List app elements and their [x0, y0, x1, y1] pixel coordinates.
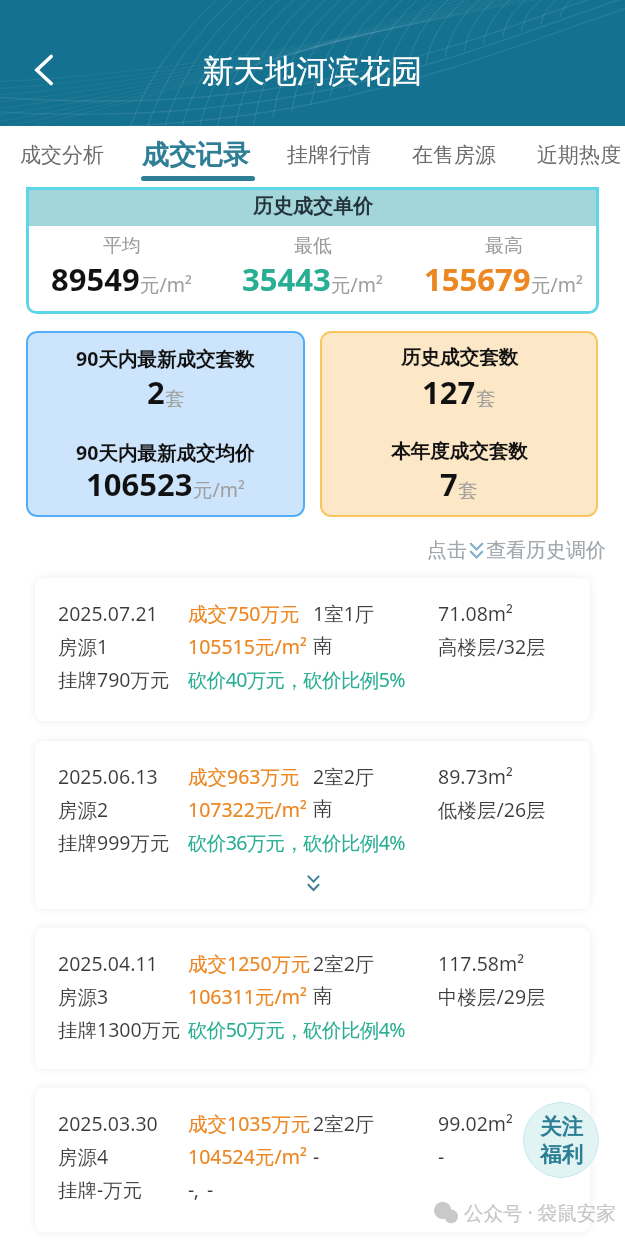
- button[interactable]: 历史成交套数: [320, 331, 598, 517]
- staticText: 套: [476, 386, 496, 411]
- staticText: 公众号 · 袋鼠安家: [464, 1199, 616, 1226]
- staticText: 南: [313, 633, 333, 658]
- button[interactable]: 2025.03.30: [35, 1088, 590, 1232]
- staticText: 89549: [51, 258, 140, 300]
- staticText: 查看历史调价: [486, 538, 606, 563]
- staticText: 砍价36万元，砍价比例4%: [188, 829, 405, 856]
- staticText: 关注: [540, 1113, 583, 1140]
- staticText: -: [313, 1143, 320, 1170]
- staticText: 2025.04.11: [58, 950, 158, 977]
- staticText: 90天内最新成交均价: [76, 439, 255, 466]
- staticText: 35443: [242, 258, 331, 300]
- staticText: 104524元/m²: [188, 1143, 307, 1170]
- staticText: 元/m²: [193, 476, 245, 503]
- staticText: 117.58m²: [438, 950, 525, 977]
- staticText: 105515元/m²: [188, 633, 307, 660]
- staticText: 最低: [294, 234, 332, 258]
- staticText: 成交963万元: [188, 763, 300, 790]
- staticText: 房源1: [58, 633, 109, 660]
- button[interactable]: Back: [16, 42, 72, 98]
- button[interactable]: 在售房源: [400, 126, 510, 187]
- staticText: 在售房源: [412, 142, 496, 168]
- staticText: 155679: [424, 258, 531, 300]
- staticText: 近期热度: [537, 142, 621, 168]
- staticText: 99.02m²: [438, 1110, 513, 1137]
- staticText: 挂牌790万元: [58, 666, 170, 693]
- staticText: 点击: [427, 538, 467, 563]
- staticText: 2025.07.21: [58, 600, 158, 627]
- staticText: 90天内最新成交套数: [76, 345, 255, 372]
- staticText: 中楼层/29层: [438, 983, 546, 1010]
- staticText: 127: [422, 371, 476, 413]
- staticText: 2室2厅: [313, 950, 375, 977]
- staticText: 成交1250万元: [188, 950, 311, 977]
- staticText: 2室2厅: [313, 1110, 375, 1137]
- staticText: 成交分析: [20, 142, 104, 168]
- button[interactable]: 成交记录: [130, 126, 266, 187]
- staticText: 元/m²: [140, 271, 192, 298]
- staticText: 2025.06.13: [58, 763, 158, 790]
- staticText: 107322元/m²: [188, 796, 307, 823]
- staticText: -, -: [188, 1176, 213, 1203]
- staticText: 挂牌-万元: [58, 1176, 143, 1203]
- button[interactable]: 2025.07.21: [35, 578, 590, 721]
- staticText: 2室2厅: [313, 763, 375, 790]
- staticText: 历史成交单价: [253, 194, 373, 219]
- staticText: 砍价40万元，砍价比例5%: [188, 666, 405, 693]
- staticText: 平均: [103, 234, 141, 258]
- staticText: 福利: [540, 1141, 583, 1168]
- staticText: 元/m²: [331, 271, 383, 298]
- button[interactable]: 历史成交单价: [26, 187, 599, 314]
- staticText: 砍价50万元，砍价比例4%: [188, 1016, 405, 1043]
- staticText: 套: [165, 386, 185, 411]
- staticText: 新天地河滨花园: [202, 52, 423, 92]
- staticText: 房源4: [58, 1143, 109, 1170]
- staticText: 挂牌行情: [287, 142, 371, 168]
- staticText: 89.73m²: [438, 763, 513, 790]
- staticText: 成交记录: [142, 138, 250, 172]
- button[interactable]: 2025.04.11: [35, 928, 590, 1069]
- staticText: 71.08m²: [438, 600, 513, 627]
- staticText: 7: [440, 463, 458, 505]
- staticText: 房源3: [58, 983, 109, 1010]
- staticText: 低楼层/26层: [438, 796, 546, 823]
- button[interactable]: 成交分析: [8, 126, 118, 187]
- staticText: 成交750万元: [188, 600, 300, 627]
- staticText: 1室1厅: [313, 600, 375, 627]
- button[interactable]: 90天内最新成交套数: [26, 331, 305, 517]
- staticText: 106523: [86, 463, 193, 505]
- staticText: 成交1035万元: [188, 1110, 311, 1137]
- button[interactable]: 挂牌行情: [275, 126, 385, 187]
- staticText: 套: [458, 478, 478, 503]
- button[interactable]: 展开更多: [283, 859, 343, 905]
- button[interactable]: 点击: [427, 533, 606, 567]
- button[interactable]: 2025.06.13: [35, 741, 590, 909]
- staticText: 最高: [485, 234, 523, 258]
- staticText: 2025.03.30: [58, 1110, 158, 1137]
- staticText: 房源2: [58, 796, 109, 823]
- staticText: 高楼层/32层: [438, 633, 546, 660]
- staticText: 本年度成交套数: [391, 439, 528, 464]
- staticText: 南: [313, 983, 333, 1008]
- staticText: 南: [313, 796, 333, 821]
- staticText: 2: [147, 371, 165, 413]
- staticText: 挂牌999万元: [58, 829, 170, 856]
- staticText: 元/m²: [531, 271, 583, 298]
- staticText: 历史成交套数: [401, 345, 518, 370]
- staticText: 106311元/m²: [188, 983, 307, 1010]
- staticText: -: [438, 1143, 445, 1170]
- staticText: 挂牌1300万元: [58, 1016, 181, 1043]
- button[interactable]: 关注福利: [523, 1102, 599, 1178]
- button[interactable]: 近期热度: [525, 126, 625, 187]
